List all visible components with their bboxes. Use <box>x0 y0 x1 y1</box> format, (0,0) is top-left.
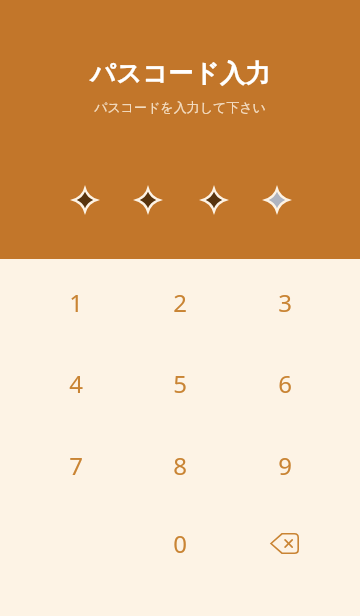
staticText: 8 <box>173 449 187 482</box>
button[interactable]: 7 <box>33 434 119 496</box>
staticText: 9 <box>278 449 292 482</box>
button[interactable]: 2 <box>137 271 223 333</box>
button[interactable]: 0 <box>137 512 223 574</box>
staticText: 2 <box>173 286 187 319</box>
button[interactable]: 9 <box>242 434 328 496</box>
button[interactable]: 6 <box>242 352 328 414</box>
staticText: 0 <box>173 527 187 560</box>
staticText: 4 <box>69 367 83 400</box>
button[interactable]: 3 <box>242 271 328 333</box>
staticText: 5 <box>173 367 187 400</box>
button[interactable]: 4 <box>33 352 119 414</box>
staticText: 1 <box>69 286 83 319</box>
staticText: 3 <box>278 286 292 319</box>
button[interactable]: 8 <box>137 434 223 496</box>
button[interactable]: 5 <box>137 352 223 414</box>
staticText: パスコード入力 <box>90 58 271 89</box>
button[interactable]: 1 <box>33 271 119 333</box>
staticText: パスコードを入力して下さい <box>94 99 266 115</box>
staticText: 7 <box>69 449 83 482</box>
staticText: 6 <box>278 367 292 400</box>
button[interactable]: Backspace <box>242 512 328 574</box>
